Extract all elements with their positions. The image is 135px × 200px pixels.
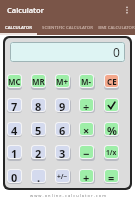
button[interactable]: %: [105, 123, 118, 135]
staticText: CE: [107, 76, 117, 87]
staticText: =: [108, 170, 115, 182]
staticText: 5: [35, 123, 42, 135]
button[interactable]: 1: [8, 146, 21, 158]
other: Square root: [107, 101, 116, 110]
staticText: MC: [8, 76, 21, 87]
staticText: ×: [83, 123, 90, 135]
button[interactable]: More options: [119, 0, 135, 19]
staticText: SCIENTIFIC CALCULATOR: [42, 24, 93, 30]
staticText: 2: [35, 146, 42, 158]
button[interactable]: SCIENTIFIC CALCULATOR: [37, 19, 97, 35]
staticText: Calculator: [7, 5, 44, 15]
staticText: −: [83, 146, 90, 158]
button[interactable]: 1/x: [105, 146, 118, 158]
staticText: 4: [11, 123, 18, 135]
button[interactable]: MR: [32, 75, 45, 87]
button[interactable]: 3: [56, 146, 69, 158]
button[interactable]: CALCULATOR: [0, 19, 37, 35]
staticText: CALCULATOR: [5, 24, 32, 30]
button[interactable]: ÷: [80, 99, 93, 111]
button[interactable]: =: [105, 170, 118, 182]
staticText: 0: [11, 170, 18, 182]
button[interactable]: CE: [105, 75, 118, 87]
button[interactable]: 5: [32, 123, 45, 135]
button[interactable]: +: [80, 170, 93, 182]
button[interactable]: 0: [8, 170, 21, 182]
staticText: MR: [32, 76, 45, 87]
button[interactable]: 6: [56, 123, 69, 135]
staticText: 6: [59, 123, 66, 135]
staticText: 9: [59, 99, 66, 111]
button[interactable]: M-: [80, 75, 93, 87]
button[interactable]: Square root: [105, 99, 118, 111]
staticText: +/−: [57, 172, 68, 181]
staticText: 1/x: [106, 148, 117, 157]
button[interactable]: 9: [56, 99, 69, 111]
button[interactable]: BMI CALCULATOR: [97, 19, 135, 35]
staticText: 7: [11, 99, 18, 111]
staticText: 3: [59, 146, 66, 158]
button[interactable]: 4: [8, 123, 21, 135]
staticText: 0: [113, 44, 120, 60]
staticText: +: [83, 170, 90, 182]
button[interactable]: 7: [8, 99, 21, 111]
staticText: M-: [81, 76, 92, 87]
staticText: %: [107, 123, 117, 135]
staticText: M+: [56, 76, 69, 87]
staticText: ÷: [83, 99, 90, 111]
button[interactable]: +/−: [56, 170, 69, 182]
staticText: 1: [11, 146, 18, 158]
button[interactable]: 2: [32, 146, 45, 158]
button[interactable]: .: [32, 170, 45, 182]
button[interactable]: −: [80, 146, 93, 158]
button[interactable]: M+: [56, 75, 69, 87]
button[interactable]: ×: [80, 123, 93, 135]
staticText: 8: [35, 99, 42, 111]
staticText: w w w . o n l i n e - c a l c u l a t o …: [30, 193, 106, 198]
button[interactable]: MC: [8, 75, 21, 87]
staticText: .: [37, 170, 41, 182]
staticText: BMI CALCULATOR: [98, 24, 135, 30]
button[interactable]: 8: [32, 99, 45, 111]
